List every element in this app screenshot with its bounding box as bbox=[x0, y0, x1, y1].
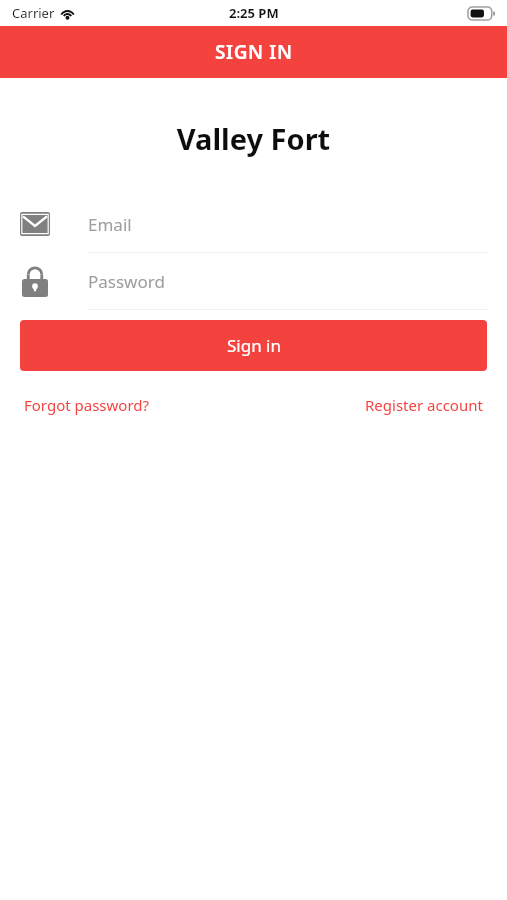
staticText: Sign in bbox=[227, 334, 281, 357]
other: Email bbox=[20, 212, 50, 236]
staticText: SIGN IN bbox=[215, 39, 293, 65]
button[interactable]: Forgot password? bbox=[24, 391, 150, 419]
staticText: Forgot password? bbox=[24, 395, 150, 415]
staticText: Carrier bbox=[12, 4, 55, 22]
button[interactable]: Password bbox=[0, 253, 507, 310]
staticText: Register account bbox=[365, 395, 483, 415]
other: Password bbox=[22, 266, 48, 297]
button[interactable]: Email bbox=[0, 196, 507, 253]
staticText: Valley Fort bbox=[0, 119, 507, 158]
staticText: 2:25 PM bbox=[229, 4, 279, 22]
button[interactable]: Register account bbox=[365, 391, 483, 419]
staticText: Password bbox=[88, 270, 165, 293]
staticText: Email bbox=[88, 213, 132, 236]
button[interactable]: Sign in bbox=[20, 320, 487, 371]
